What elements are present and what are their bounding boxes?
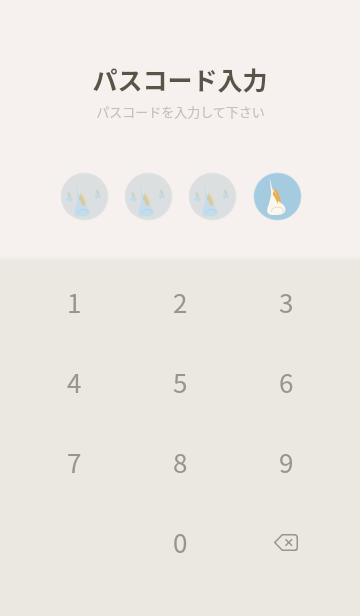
staticText: 3 [279,283,294,321]
staticText: 4 [67,363,82,401]
button[interactable]: 5 [130,344,230,420]
staticText: 1 [67,283,82,321]
staticText: 7 [67,443,82,481]
staticText: 9 [279,443,294,481]
staticText: 6 [279,363,294,401]
button[interactable]: 1 [24,264,124,340]
staticText: 5 [173,363,188,401]
button[interactable]: 3 [236,264,336,340]
button[interactable]: 6 [236,344,336,420]
button[interactable]: 7 [24,424,124,500]
button[interactable]: Delete [236,504,336,580]
staticText: パスコード入力 [92,61,268,97]
button[interactable]: 4 [24,344,124,420]
button[interactable]: 2 [130,264,230,340]
staticText: パスコードを入力して下さい [96,102,265,121]
staticText: 8 [173,443,188,481]
other: Backspace [274,534,298,551]
button[interactable]: 9 [236,424,336,500]
button[interactable]: 0 [130,504,230,580]
button[interactable]: 8 [130,424,230,500]
staticText: 2 [173,283,188,321]
staticText: 0 [173,523,188,561]
